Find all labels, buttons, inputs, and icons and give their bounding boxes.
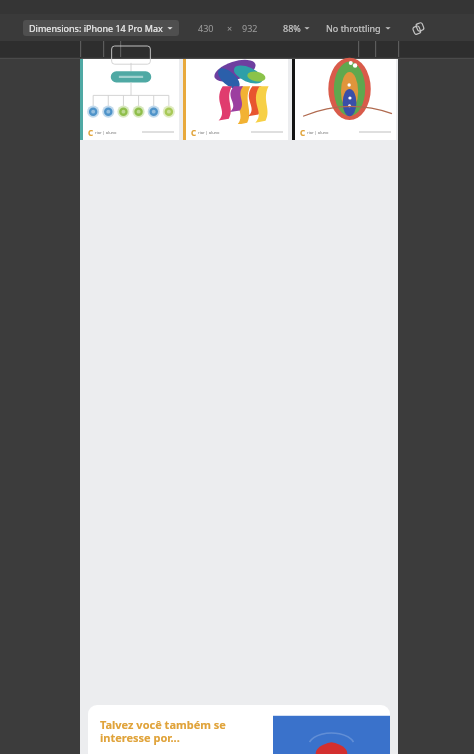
staticText: C	[300, 127, 306, 138]
staticText: C	[191, 127, 197, 138]
button[interactable]: C	[292, 59, 396, 140]
button[interactable]: C	[80, 59, 179, 140]
staticText: 88%	[283, 22, 301, 34]
button[interactable]: Rotate device	[408, 18, 428, 38]
staticText: ×	[227, 22, 233, 34]
staticText: riar | aluno	[198, 130, 220, 135]
staticText: 932	[242, 22, 258, 34]
button[interactable]: C	[183, 59, 288, 140]
staticText: Dimensions: iPhone 14 Pro Max	[29, 22, 163, 34]
staticText: riar | aluno	[307, 130, 329, 135]
staticText: riar | aluno	[95, 130, 117, 135]
staticText: C	[88, 127, 94, 138]
staticText: Talvez você também se interesse por...	[100, 717, 226, 745]
button[interactable]: No throttling	[324, 18, 393, 38]
staticText: 430	[198, 22, 214, 34]
button[interactable]: Dimensions: iPhone 14 Pro Max	[23, 20, 179, 36]
button[interactable]: 88%	[281, 18, 312, 38]
staticText: No throttling	[326, 22, 381, 34]
button[interactable]: Talvez você também se interesse por...	[88, 705, 390, 754]
